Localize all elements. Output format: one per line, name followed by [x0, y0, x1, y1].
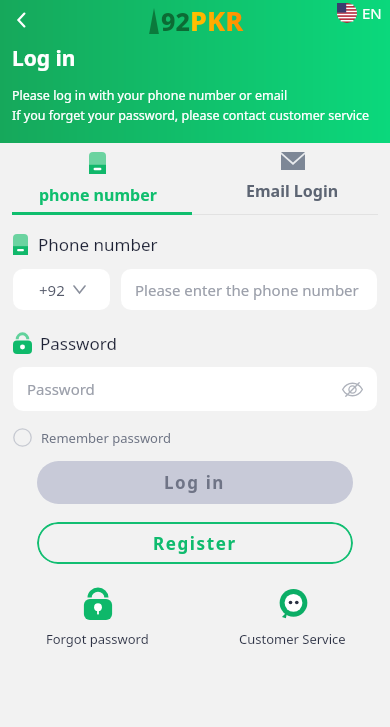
- staticText: Register: [153, 532, 237, 555]
- staticText: PKR: [190, 2, 244, 39]
- staticText: Forgot password: [46, 630, 149, 648]
- staticText: Remember password: [41, 429, 172, 447]
- staticText: phone number: [39, 184, 157, 206]
- staticText: +92: [39, 280, 65, 300]
- button[interactable]: Forgot password: [0, 588, 195, 648]
- staticText: If you forget your password, please cont…: [12, 107, 370, 124]
- button[interactable]: phone number: [0, 143, 195, 215]
- button[interactable]: Register: [37, 522, 353, 564]
- button[interactable]: Password: [13, 367, 377, 411]
- staticText: Password: [27, 379, 95, 399]
- staticText: Email Login: [246, 180, 339, 202]
- button[interactable]: Back: [4, 2, 40, 38]
- staticText: Please log in with your phone number or …: [12, 87, 288, 104]
- button[interactable]: Please enter the phone number: [121, 269, 377, 310]
- button[interactable]: Show password: [337, 374, 367, 404]
- button[interactable]: EN: [337, 3, 382, 23]
- button[interactable]: Email Login: [195, 143, 390, 215]
- button[interactable]: Customer Service: [195, 588, 390, 648]
- staticText: Customer Service: [239, 630, 346, 648]
- staticText: Log in: [12, 44, 76, 73]
- staticText: Log in: [164, 471, 226, 494]
- button[interactable]: Remember password: [13, 428, 172, 447]
- staticText: EN: [362, 3, 382, 23]
- staticText: Phone number: [38, 233, 158, 256]
- button[interactable]: +92: [13, 269, 110, 310]
- staticText: 92: [161, 4, 190, 38]
- staticText: Please enter the phone number: [135, 280, 359, 300]
- button[interactable]: Log in: [37, 461, 353, 504]
- staticText: Password: [40, 332, 117, 355]
